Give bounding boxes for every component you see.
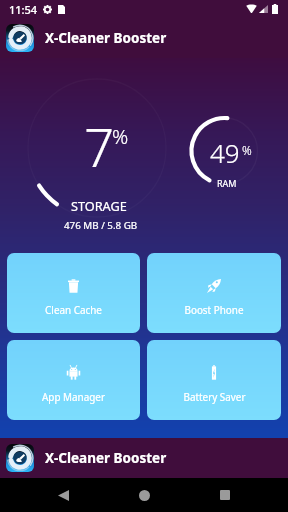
staticText: % [112, 123, 129, 150]
button[interactable]: Home [133, 484, 155, 506]
staticText: % [242, 142, 252, 158]
button[interactable]: Clean Cache [7, 253, 140, 333]
staticText: STORAGE [71, 197, 127, 214]
button[interactable]: App Manager [7, 340, 140, 420]
button[interactable]: X-Cleaner Booster [0, 18, 288, 58]
button[interactable]: Back [52, 484, 74, 506]
button[interactable]: Recents [214, 484, 236, 506]
staticText: Clean Cache [45, 303, 102, 316]
button[interactable]: X-Cleaner Booster [0, 438, 288, 478]
staticText: X-Cleaner Booster [45, 29, 167, 47]
staticText: App Manager [42, 390, 105, 403]
staticText: RAM [217, 177, 237, 189]
staticText: Boost Phone [184, 303, 244, 316]
staticText: 49 [210, 135, 240, 170]
button[interactable]: Battery Saver [147, 340, 281, 420]
staticText: 476 MB / 5.8 GB [64, 219, 138, 232]
staticText: Battery Saver [183, 390, 246, 403]
staticText: X-Cleaner Booster [45, 449, 167, 467]
staticText: 11:54 [9, 2, 38, 17]
staticText: 7 [84, 110, 115, 182]
button[interactable]: Boost Phone [147, 253, 281, 333]
